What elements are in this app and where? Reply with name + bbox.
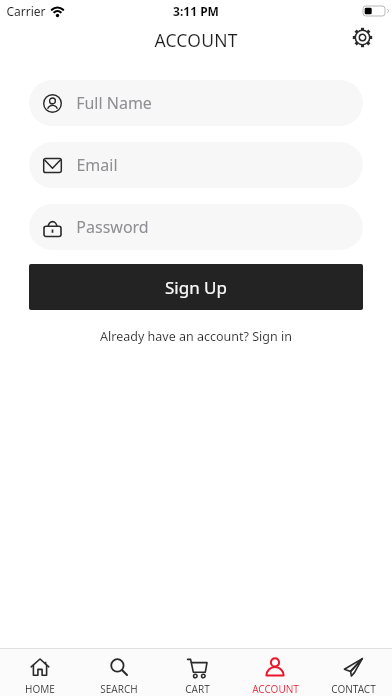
- staticText: Email: [76, 154, 118, 176]
- staticText: Already have an account? Sign in: [100, 328, 292, 345]
- button[interactable]: ACCOUNT: [236, 649, 314, 696]
- staticText: 3:11 PM: [173, 3, 219, 19]
- button[interactable]: Already have an account? Sign in: [0, 328, 392, 345]
- staticText: CONTACT: [331, 682, 376, 696]
- button[interactable]: CART: [158, 649, 236, 696]
- button[interactable]: Full Name: [29, 80, 363, 126]
- button[interactable]: [349, 24, 375, 50]
- staticText: Password: [76, 216, 149, 238]
- staticText: Sign Up: [165, 276, 227, 299]
- staticText: CART: [185, 682, 210, 696]
- button[interactable]: CONTACT: [314, 649, 392, 696]
- button[interactable]: HOME: [0, 649, 79, 696]
- button[interactable]: Password: [29, 204, 363, 250]
- button[interactable]: SEARCH: [79, 649, 158, 696]
- staticText: HOME: [25, 682, 55, 696]
- staticText: Full Name: [76, 92, 152, 114]
- button[interactable]: Sign Up: [29, 264, 363, 310]
- staticText: ACCOUNT: [252, 682, 299, 696]
- button[interactable]: Email: [29, 142, 363, 188]
- staticText: SEARCH: [100, 682, 138, 696]
- staticText: Carrier: [6, 3, 46, 19]
- staticText: ACCOUNT: [154, 28, 238, 52]
